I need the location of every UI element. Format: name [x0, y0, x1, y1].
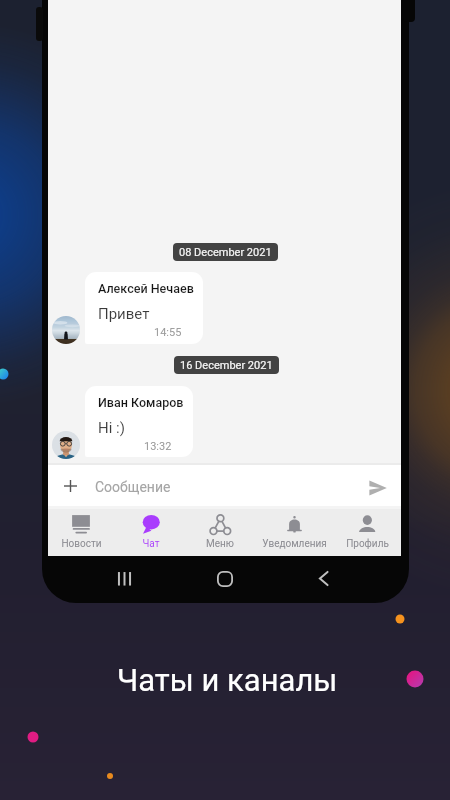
- button[interactable]: Алексей Нечаев: [85, 272, 203, 344]
- button[interactable]: Новости: [46, 509, 116, 556]
- staticText: Чат: [142, 538, 160, 550]
- staticText: Профиль: [346, 538, 389, 550]
- staticText: Уведомления: [262, 538, 327, 550]
- button[interactable]: Home: [209, 563, 240, 594]
- button[interactable]: Профиль: [332, 509, 402, 556]
- staticText: Hi :): [98, 419, 125, 437]
- button[interactable]: Иван Комаров: [85, 386, 193, 457]
- staticText: 14:55: [154, 326, 182, 339]
- button[interactable]: Attach: [57, 472, 84, 499]
- button[interactable]: Send: [365, 475, 391, 501]
- button[interactable]: Recent apps: [109, 563, 140, 594]
- button[interactable]: Чат: [116, 509, 186, 556]
- staticText: 13:32: [144, 440, 172, 453]
- staticText: Алексей Нечаев: [98, 281, 194, 296]
- staticText: Привет: [98, 305, 150, 323]
- staticText: Иван Комаров: [98, 395, 184, 410]
- staticText: 16 December 2021: [180, 359, 273, 372]
- button[interactable]: Back: [308, 563, 339, 594]
- button[interactable]: Уведомления: [259, 509, 329, 556]
- button[interactable]: 16 December 2021: [174, 356, 279, 374]
- staticText: Меню: [206, 538, 234, 550]
- button[interactable]: 08 December 2021: [173, 243, 278, 261]
- staticText: Новости: [61, 538, 102, 550]
- staticText: Чаты и каналы: [117, 662, 338, 698]
- staticText: Сообщение: [95, 479, 171, 495]
- staticText: 08 December 2021: [179, 246, 272, 259]
- button[interactable]: Меню: [185, 509, 255, 556]
